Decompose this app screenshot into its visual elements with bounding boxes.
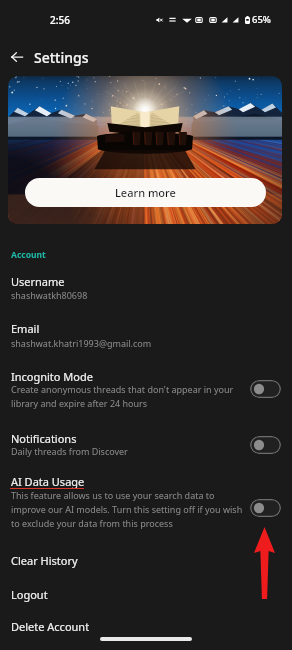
staticText: Notifications bbox=[11, 431, 77, 446]
staticText: shashwat.khatri1993@gmail.com bbox=[11, 337, 152, 349]
button[interactable]: Learn more bbox=[25, 178, 266, 207]
button[interactable]: Toggle setting bbox=[250, 499, 281, 517]
staticText: Logout bbox=[11, 587, 48, 602]
staticText: Settings bbox=[34, 48, 89, 67]
staticText: Create anonymous threads that don't appe… bbox=[11, 383, 243, 409]
staticText: Learn more bbox=[115, 185, 176, 200]
staticText: Email bbox=[11, 321, 40, 336]
staticText: Daily threads from Discover bbox=[11, 445, 128, 457]
staticText: Account bbox=[11, 249, 46, 261]
staticText: Username bbox=[11, 274, 65, 289]
button[interactable]: Clear History bbox=[0, 544, 292, 576]
staticText: AI Data Usage bbox=[11, 474, 85, 489]
button[interactable]: Toggle setting bbox=[250, 436, 281, 454]
button[interactable]: Delete Account bbox=[0, 610, 292, 642]
staticText: 2:56 bbox=[50, 13, 70, 27]
staticText: Delete Account bbox=[11, 619, 90, 634]
button[interactable]: Back bbox=[5, 45, 29, 69]
staticText: shashwatkh80698 bbox=[11, 289, 88, 301]
button[interactable]: Logout bbox=[0, 578, 292, 610]
staticText: Clear History bbox=[11, 553, 78, 568]
staticText: Incognito Mode bbox=[11, 369, 93, 384]
staticText: This feature allows us to use your searc… bbox=[11, 489, 243, 529]
staticText: 65% bbox=[252, 13, 271, 26]
button[interactable]: Toggle setting bbox=[250, 380, 281, 398]
